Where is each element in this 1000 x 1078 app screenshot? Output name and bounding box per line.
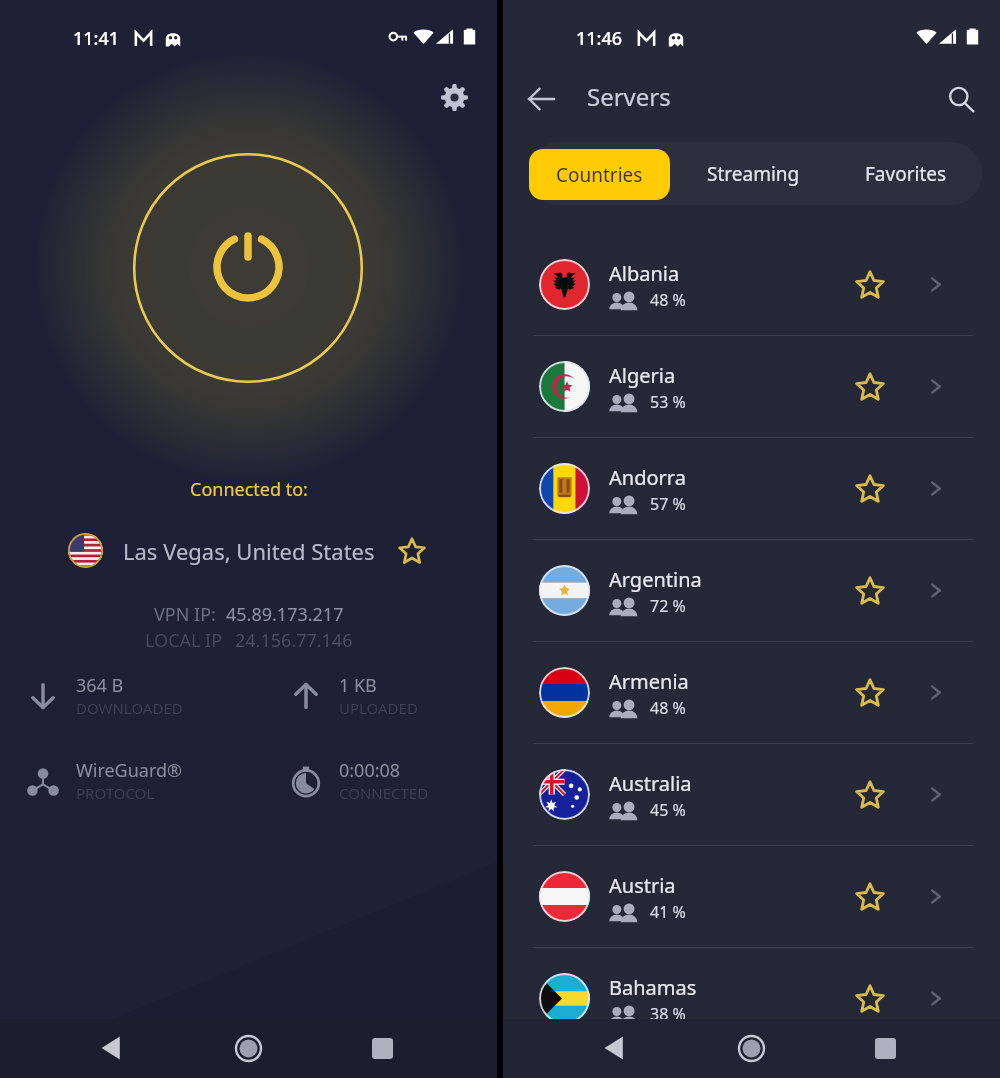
staticText: Albania: [609, 260, 680, 287]
staticText: Servers: [587, 80, 671, 113]
button[interactable]: Favorite: [847, 262, 893, 308]
staticText: Connected to:: [190, 477, 308, 502]
staticText: Las Vegas, United States: [123, 536, 375, 566]
button[interactable]: Favorite: [395, 534, 429, 568]
button[interactable]: Argentina: [503, 540, 1000, 641]
button[interactable]: Streaming: [678, 142, 828, 205]
staticText: WireGuard®: [76, 758, 183, 783]
staticText: LOCAL IP: [145, 628, 223, 653]
staticText: CONNECTED: [339, 783, 429, 803]
button[interactable]: Countries: [529, 149, 670, 200]
button[interactable]: Australia: [503, 744, 1000, 845]
button[interactable]: Algeria: [503, 336, 1000, 437]
staticText: Bahamas: [609, 974, 697, 1001]
staticText: Favorites: [865, 161, 947, 187]
button[interactable]: Recent apps: [860, 1023, 910, 1073]
staticText: Algeria: [609, 362, 676, 389]
button[interactable]: Settings: [430, 73, 478, 121]
button[interactable]: Back: [517, 75, 565, 123]
staticText: 48 %: [650, 697, 686, 719]
staticText: 53 %: [650, 391, 686, 413]
button[interactable]: Andorra: [503, 438, 1000, 539]
button[interactable]: Favorite: [847, 670, 893, 716]
staticText: 11:41: [73, 26, 120, 51]
staticText: 1 KB: [339, 673, 377, 698]
button[interactable]: Favorite: [847, 364, 893, 410]
button[interactable]: Armenia: [503, 642, 1000, 743]
staticText: 24.156.77.146: [235, 628, 353, 653]
button[interactable]: Home: [726, 1023, 776, 1073]
button[interactable]: Home: [223, 1023, 273, 1073]
staticText: Streaming: [707, 161, 800, 187]
staticText: Australia: [609, 770, 692, 797]
staticText: Countries: [556, 162, 643, 188]
button[interactable]: Search: [937, 75, 985, 123]
button[interactable]: Back: [87, 1023, 137, 1073]
staticText: VPN IP:: [154, 602, 216, 627]
staticText: 41 %: [650, 901, 686, 923]
staticText: Armenia: [609, 668, 689, 695]
button[interactable]: Bahamas: [503, 948, 1000, 1049]
button[interactable]: Recent apps: [357, 1023, 407, 1073]
button[interactable]: Disconnect VPN: [126, 146, 370, 390]
staticText: 0:00:08: [339, 758, 401, 783]
staticText: Austria: [609, 872, 676, 899]
button[interactable]: Back: [590, 1023, 640, 1073]
button[interactable]: Favorite: [847, 772, 893, 818]
button[interactable]: Albania: [503, 234, 1000, 335]
staticText: Argentina: [609, 566, 702, 593]
button[interactable]: Favorite: [847, 568, 893, 614]
button[interactable]: Favorite: [847, 466, 893, 512]
staticText: UPLOADED: [339, 698, 418, 718]
button[interactable]: Favorite: [847, 874, 893, 920]
staticText: DOWNLOADED: [76, 698, 183, 718]
button[interactable]: Austria: [503, 846, 1000, 947]
button[interactable]: Favorite: [847, 976, 893, 1022]
staticText: 364 B: [76, 673, 124, 698]
staticText: 57 %: [650, 493, 686, 515]
staticText: 11:46: [576, 26, 623, 51]
staticText: 45 %: [650, 799, 686, 821]
button[interactable]: Favorites: [833, 142, 978, 205]
staticText: 72 %: [650, 595, 686, 617]
staticText: 45.89.173.217: [226, 602, 344, 627]
staticText: 48 %: [650, 289, 686, 311]
staticText: 38 %: [650, 1003, 686, 1025]
staticText: PROTOCOL: [76, 783, 155, 803]
staticText: Andorra: [609, 464, 686, 491]
